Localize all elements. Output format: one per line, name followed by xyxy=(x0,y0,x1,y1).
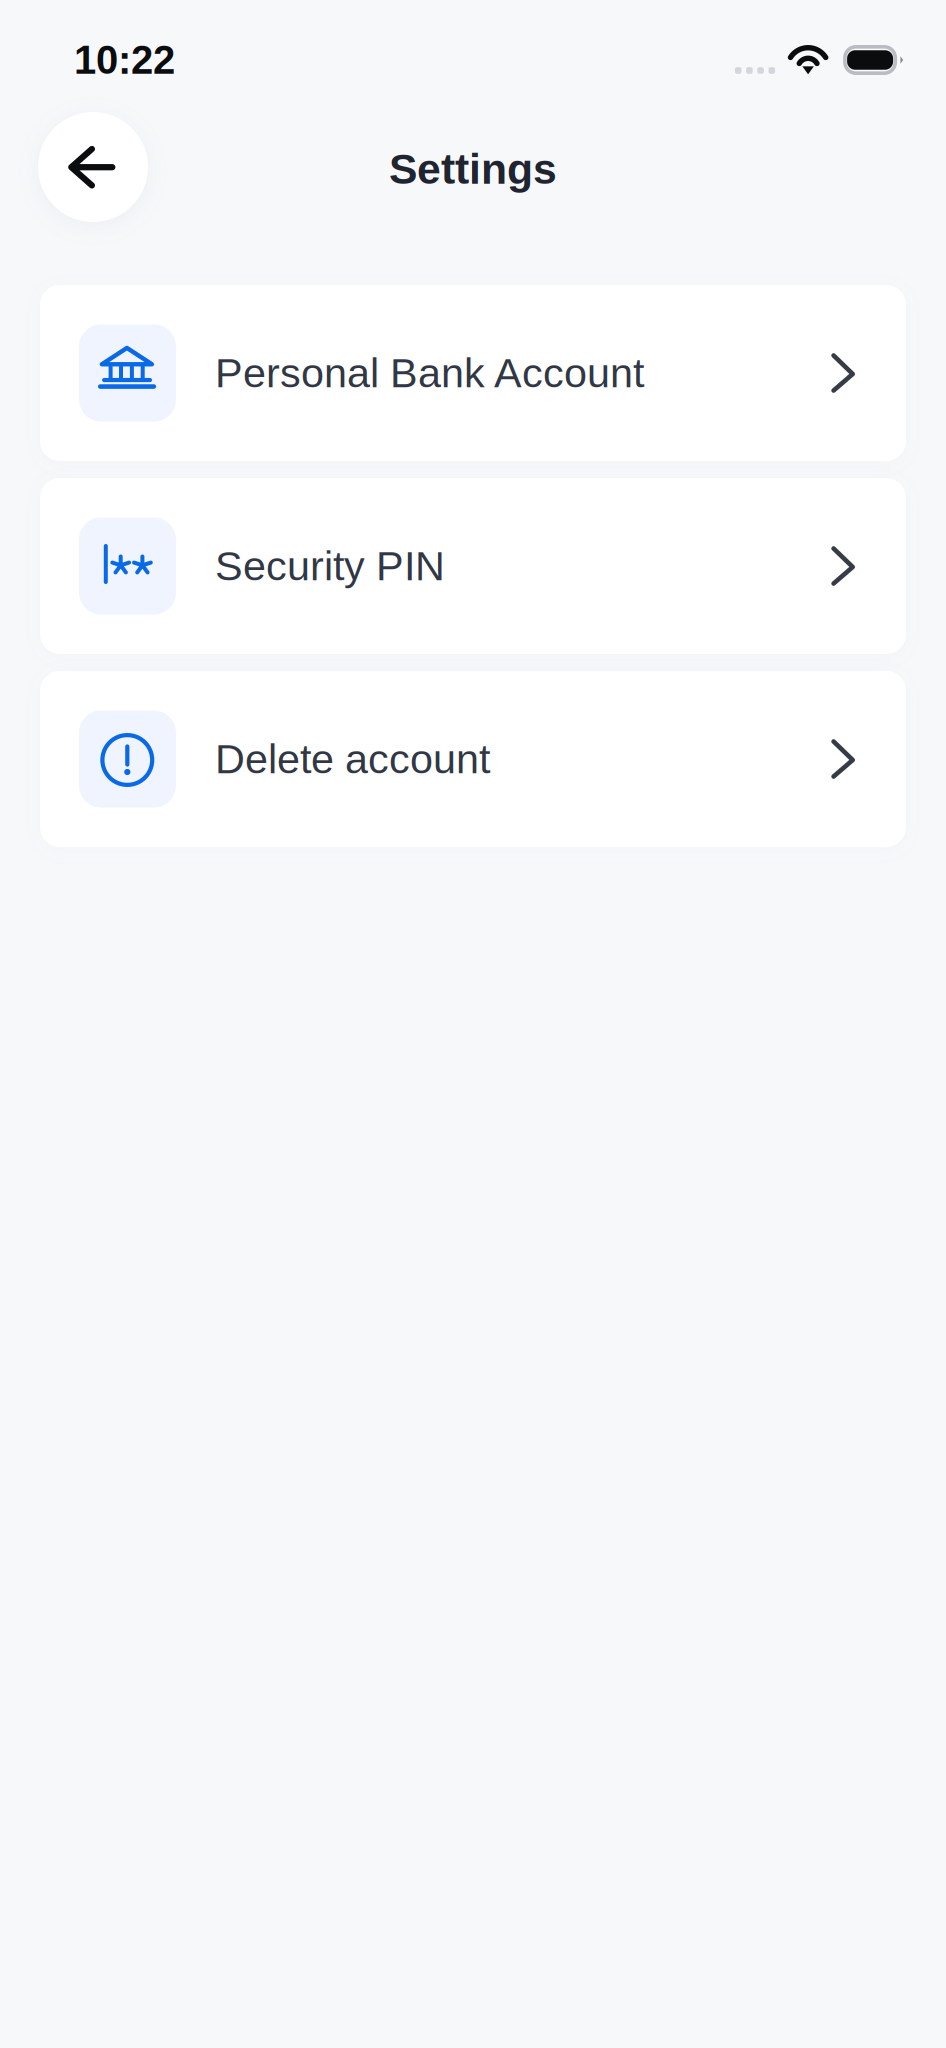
staticText: Security PIN xyxy=(215,543,445,589)
staticText: Settings xyxy=(389,145,557,193)
button[interactable]: Security PIN xyxy=(40,478,906,654)
button[interactable]: Personal Bank Account xyxy=(40,285,906,461)
button[interactable]: Back xyxy=(38,113,148,223)
staticText: Personal Bank Account xyxy=(215,350,644,396)
staticText: 10:22 xyxy=(74,38,175,82)
staticText: Delete account xyxy=(215,736,490,782)
button[interactable]: Delete account xyxy=(40,671,906,847)
